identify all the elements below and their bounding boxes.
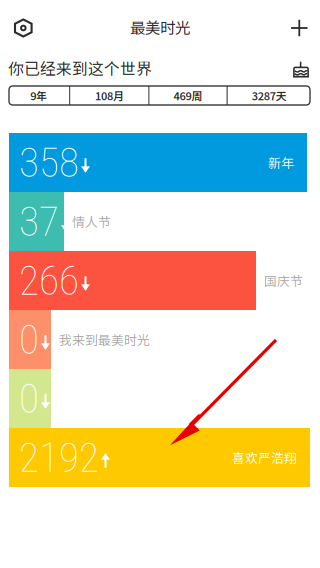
staticText: 0 — [19, 374, 39, 423]
staticText: 国庆节 — [264, 271, 303, 290]
button[interactable]: 2192 — [9, 428, 320, 487]
staticText: 266 — [19, 256, 79, 305]
button[interactable]: 108月 — [70, 86, 148, 105]
staticText: 最美时光 — [130, 16, 190, 38]
staticText: 我来到最美时光 — [59, 330, 150, 349]
button[interactable]: Birthday — [284, 56, 318, 82]
button[interactable]: 37 — [9, 192, 320, 251]
staticText: 喜欢严浩翔 — [232, 448, 297, 467]
staticText: 情人节 — [72, 212, 111, 231]
staticText: 358 — [19, 138, 79, 187]
staticText: 469周 — [174, 88, 203, 103]
staticText: 新年 — [268, 153, 294, 172]
button[interactable]: Settings — [1, 8, 45, 48]
staticText: 3287天 — [252, 88, 287, 103]
button[interactable]: 0 — [9, 369, 320, 428]
button[interactable]: 469周 — [150, 86, 227, 105]
button[interactable]: 3287天 — [228, 86, 311, 105]
staticText: 你已经来到这个世界 — [8, 57, 152, 79]
button[interactable]: Add — [279, 8, 319, 48]
staticText: 0 — [19, 315, 39, 364]
button[interactable]: 9年 — [8, 86, 69, 105]
button[interactable]: 266 — [9, 251, 320, 310]
staticText: 2192 — [19, 433, 99, 482]
button[interactable]: 0 — [9, 310, 320, 369]
staticText: 108月 — [95, 88, 124, 103]
staticText: 37 — [19, 197, 59, 246]
button[interactable]: 358 — [9, 133, 320, 192]
staticText: 9年 — [30, 88, 47, 103]
